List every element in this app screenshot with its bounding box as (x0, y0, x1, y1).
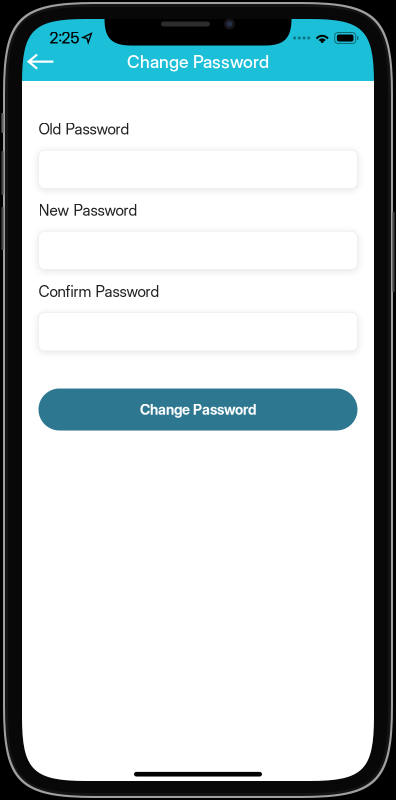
staticText: Confirm Password (38, 282, 159, 301)
button[interactable]: Change Password (38, 388, 357, 430)
button[interactable]: Back (22, 48, 62, 75)
staticText: Change Password (140, 401, 256, 418)
staticText: New Password (38, 201, 137, 219)
staticText: Change Password (127, 51, 269, 72)
staticText: 2:25 (49, 29, 79, 47)
staticText: Old Password (38, 120, 129, 138)
